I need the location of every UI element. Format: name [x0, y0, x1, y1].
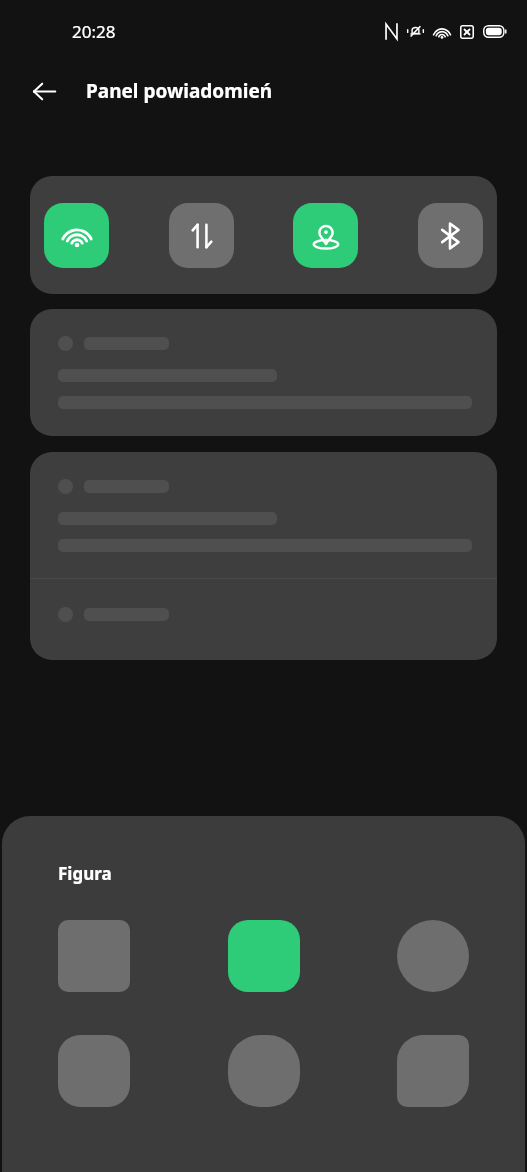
button[interactable]: Lokalizacja — [293, 203, 358, 268]
button[interactable]: Bluetooth — [418, 203, 483, 268]
staticText: Panel powiadomień — [86, 78, 273, 104]
button[interactable]: Dane komórkowe — [169, 203, 234, 268]
button[interactable]: Wstecz — [18, 65, 70, 117]
button[interactable] — [30, 309, 497, 436]
button[interactable]: Wi-Fi — [44, 203, 109, 268]
button[interactable]: Figura mieszana — [397, 1035, 469, 1107]
button[interactable] — [30, 452, 497, 578]
button[interactable]: Koło — [397, 920, 469, 992]
button[interactable]: Squircle — [228, 1035, 300, 1107]
button[interactable]: Kwadrat zielony — [228, 920, 300, 992]
staticText: 20:28 — [72, 20, 116, 43]
button[interactable]: Kwadrat zaokrąglony — [58, 1035, 130, 1107]
staticText: Figura — [58, 862, 112, 885]
button[interactable] — [30, 579, 497, 660]
button[interactable]: Prostokąt zaokrąglony — [58, 920, 130, 992]
